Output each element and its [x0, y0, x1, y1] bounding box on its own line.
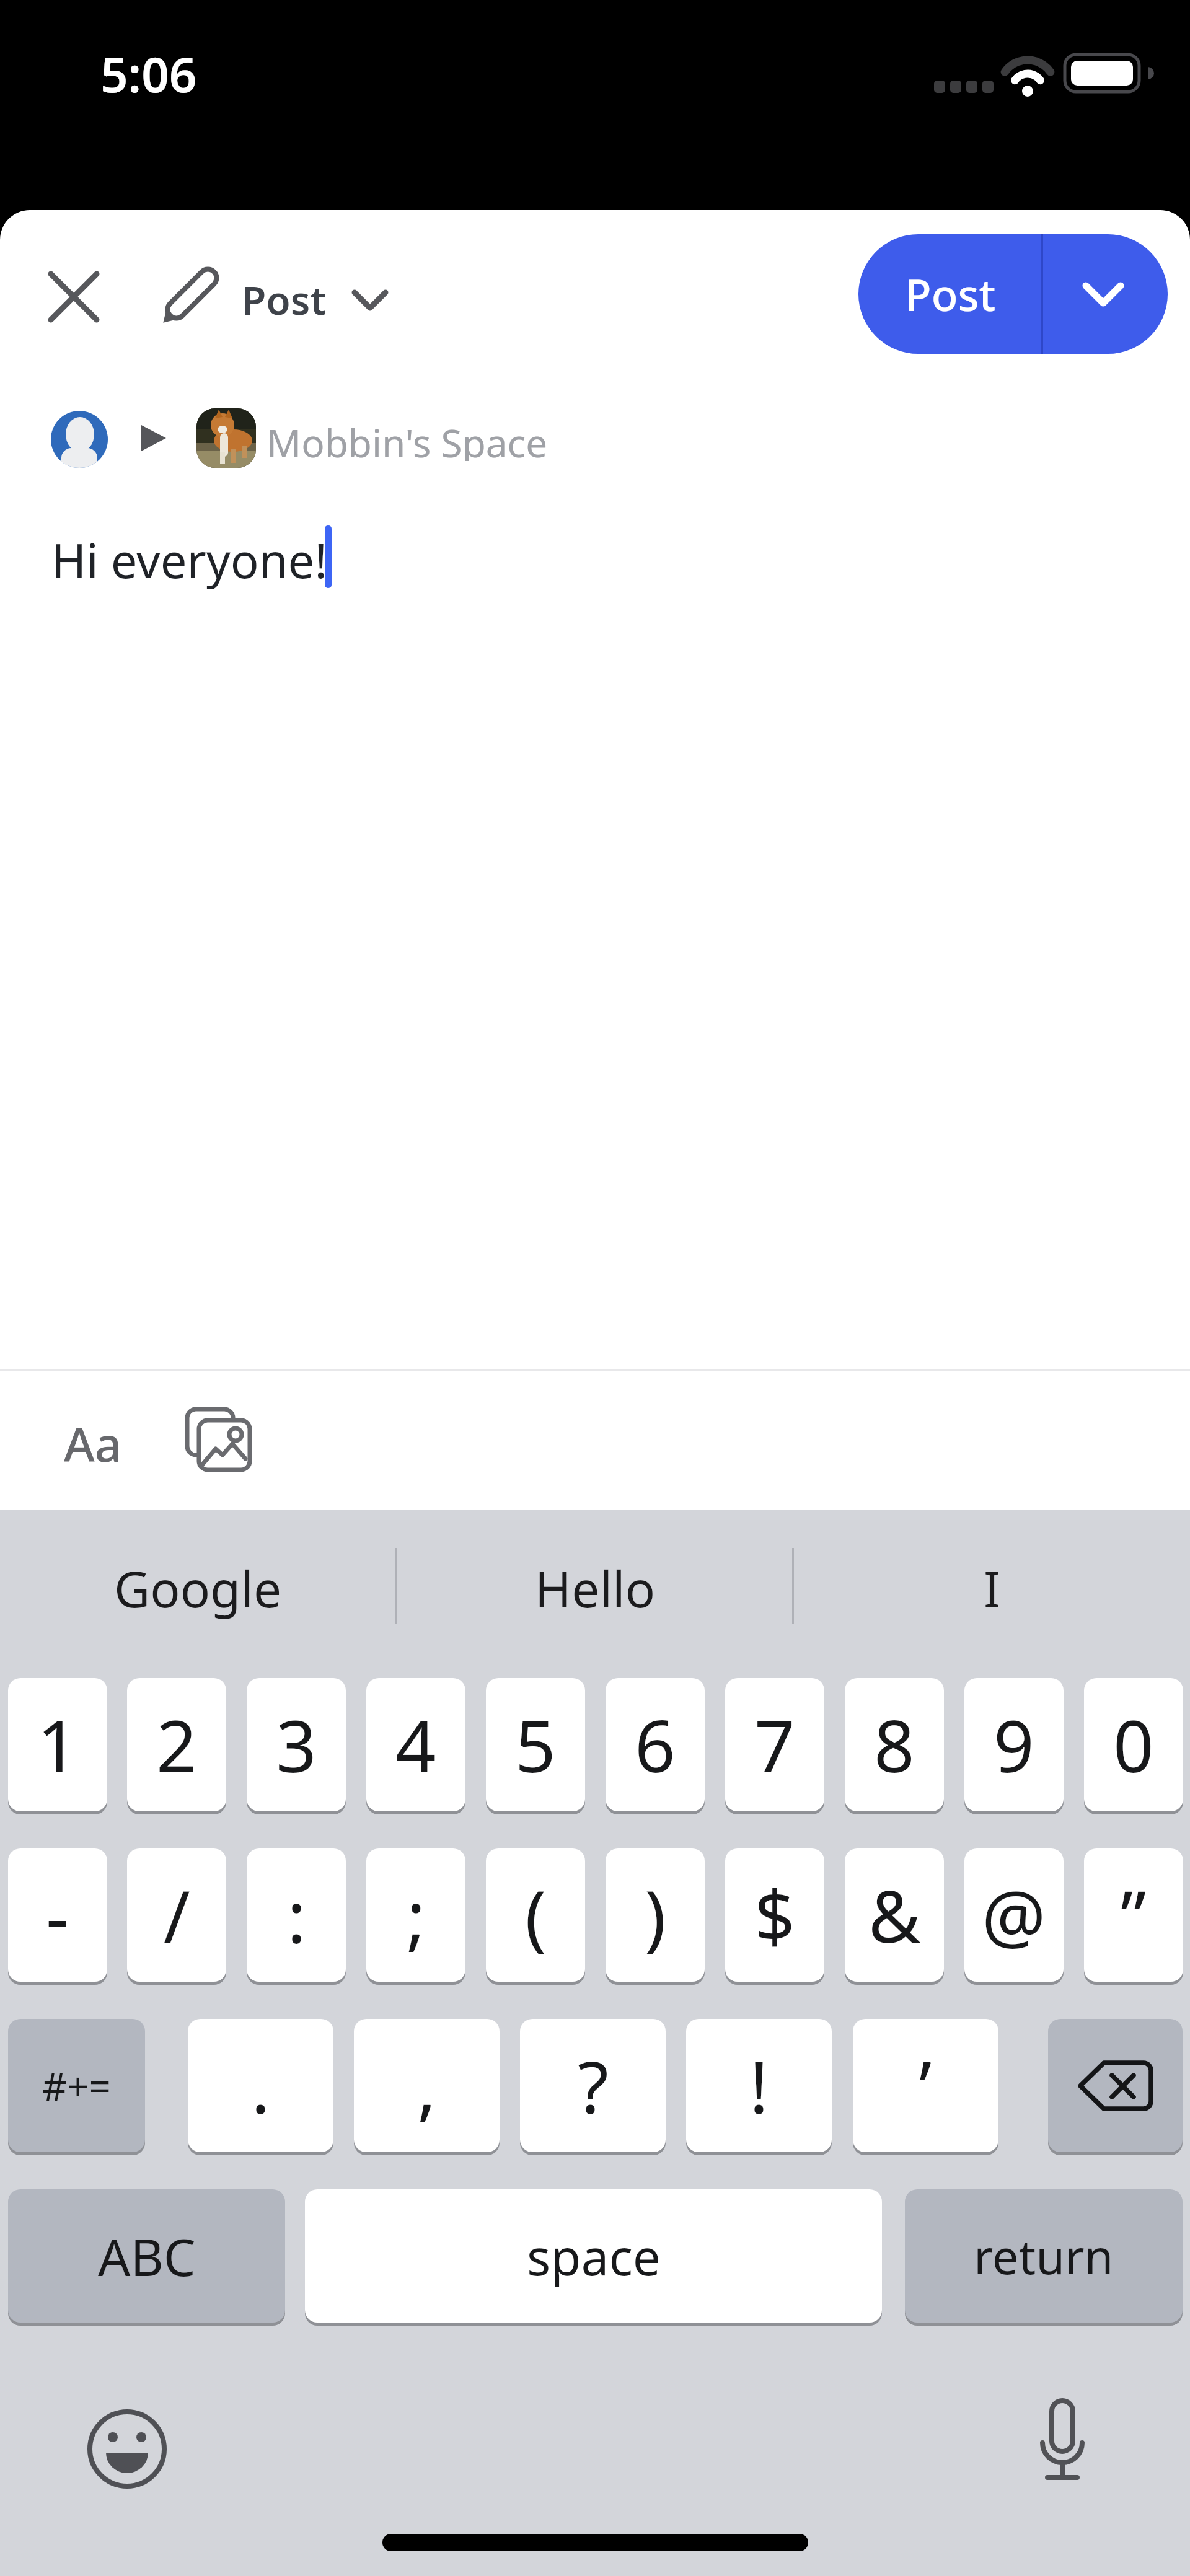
staticText: 3: [276, 1696, 317, 1793]
button[interactable]: 8: [845, 1678, 944, 1811]
staticText: Hi everyone!: [51, 528, 327, 590]
button[interactable]: !: [686, 2019, 832, 2152]
button[interactable]: [1048, 2019, 1183, 2152]
button[interactable]: $: [725, 1848, 824, 1982]
button[interactable]: 4: [366, 1678, 465, 1811]
button[interactable]: @: [964, 1848, 1064, 1982]
staticText: &: [868, 1866, 921, 1964]
button[interactable]: return: [905, 2189, 1183, 2323]
staticText: ’: [919, 2037, 932, 2134]
staticText: 8: [874, 1696, 915, 1793]
button[interactable]: ): [606, 1848, 705, 1982]
button[interactable]: [41, 264, 107, 330]
button[interactable]: 3: [247, 1678, 346, 1811]
button[interactable]: -: [8, 1848, 107, 1982]
button[interactable]: [79, 2401, 175, 2497]
staticText: ABC: [98, 2222, 196, 2291]
button[interactable]: :: [247, 1848, 346, 1982]
button[interactable]: 6: [606, 1678, 705, 1811]
button[interactable]: 0: [1084, 1678, 1183, 1811]
staticText: ;: [407, 1866, 426, 1964]
staticText: 4: [395, 1696, 436, 1793]
staticText: @: [982, 1866, 1046, 1964]
staticText: I: [984, 1554, 1001, 1622]
staticText: 6: [635, 1696, 676, 1793]
staticText: space: [527, 2222, 661, 2290]
staticText: return: [974, 2224, 1114, 2288]
button[interactable]: 5: [486, 1678, 585, 1811]
staticText: Mobbin's Space: [267, 416, 548, 461]
staticText: Post: [242, 273, 327, 319]
button[interactable]: ABC: [8, 2189, 285, 2323]
button[interactable]: 2: [127, 1678, 226, 1811]
staticText: /: [164, 1866, 190, 1964]
staticText: Google: [114, 1554, 281, 1622]
button[interactable]: [181, 1404, 255, 1475]
staticText: 9: [994, 1696, 1034, 1793]
button[interactable]: [51, 408, 565, 469]
staticText: :: [287, 1866, 306, 1964]
button[interactable]: 7: [725, 1678, 824, 1811]
button[interactable]: .: [188, 2019, 333, 2152]
button[interactable]: I: [794, 1552, 1190, 1624]
staticText: 0: [1113, 1696, 1154, 1793]
staticText: Hello: [535, 1554, 656, 1622]
staticText: .: [251, 2037, 270, 2134]
button[interactable]: Aa: [53, 1412, 133, 1467]
staticText: 5: [515, 1696, 556, 1793]
button[interactable]: space: [305, 2189, 882, 2323]
staticText: 7: [754, 1696, 795, 1793]
staticText: ?: [578, 2037, 609, 2134]
staticText: #+=: [42, 2060, 111, 2112]
button[interactable]: 1: [8, 1678, 107, 1811]
staticText: 1: [37, 1696, 78, 1793]
button[interactable]: ”: [1084, 1848, 1183, 1982]
staticText: Post: [905, 265, 996, 323]
button[interactable]: ’: [853, 2019, 998, 2152]
button[interactable]: ?: [520, 2019, 666, 2152]
staticText: (: [525, 1866, 547, 1964]
staticText: 5:06: [100, 41, 197, 100]
staticText: ): [645, 1866, 666, 1964]
button[interactable]: Post: [155, 260, 397, 335]
staticText: -: [46, 1866, 69, 1964]
button[interactable]: #+=: [8, 2019, 145, 2152]
button[interactable]: Google: [0, 1552, 395, 1624]
staticText: $: [754, 1866, 795, 1964]
button[interactable]: Hello: [397, 1552, 793, 1624]
button[interactable]: ,: [354, 2019, 500, 2152]
button[interactable]: ;: [366, 1848, 465, 1982]
staticText: ”: [1121, 1866, 1147, 1964]
staticText: Aa: [64, 1412, 122, 1467]
staticText: !: [749, 2037, 769, 2134]
button[interactable]: [1019, 2392, 1106, 2497]
button[interactable]: 9: [964, 1678, 1064, 1811]
button[interactable]: Post: [858, 234, 1168, 354]
button[interactable]: /: [127, 1848, 226, 1982]
button[interactable]: (: [486, 1848, 585, 1982]
button[interactable]: &: [845, 1848, 944, 1982]
staticText: ,: [417, 2037, 436, 2134]
staticText: 2: [156, 1696, 197, 1793]
